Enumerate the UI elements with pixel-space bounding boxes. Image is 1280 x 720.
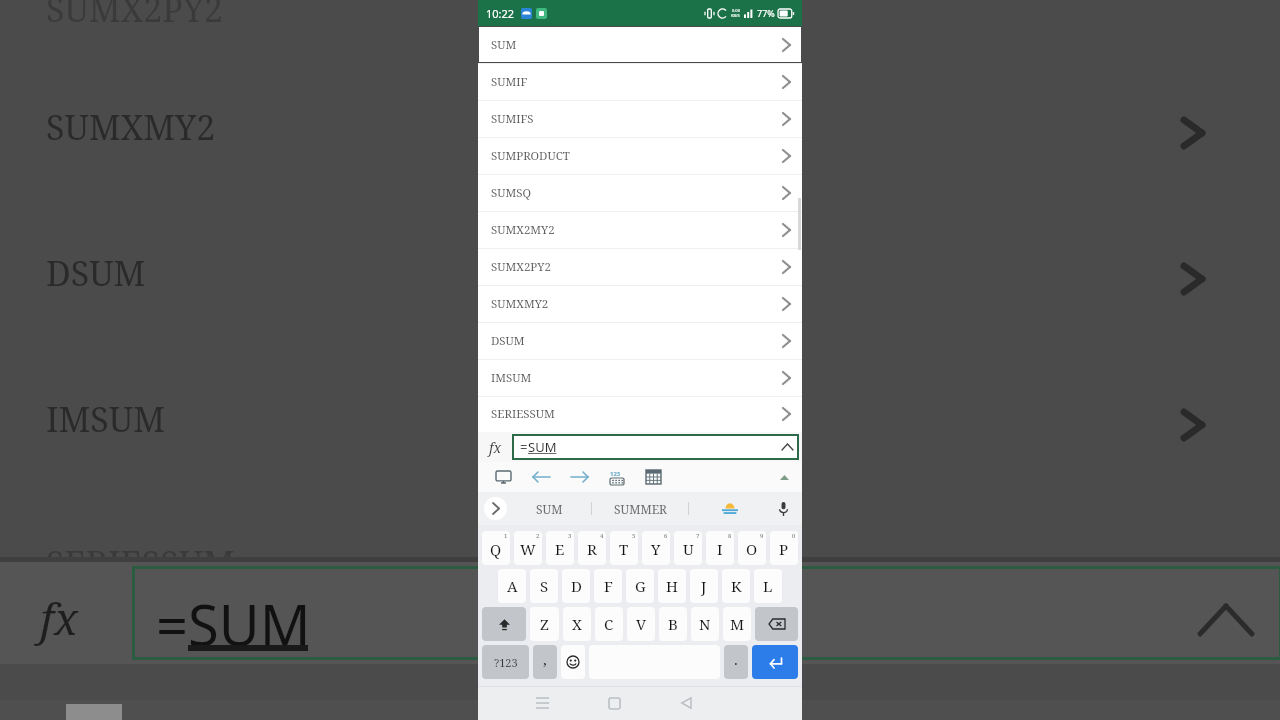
button[interactable]: F: [594, 569, 622, 603]
button[interactable]: V: [627, 607, 655, 641]
button[interactable]: SUMSQ: [478, 174, 802, 211]
button[interactable]: J: [690, 569, 718, 603]
staticText: U: [683, 539, 694, 559]
staticText: 77%: [757, 7, 775, 19]
staticText: M: [730, 614, 745, 634]
button[interactable]: Home: [597, 686, 631, 720]
button[interactable]: Backspace: [755, 607, 798, 641]
staticText: SUM: [528, 438, 557, 456]
button[interactable]: ?123: [482, 645, 529, 679]
staticText: SERIESSUM: [46, 540, 235, 586]
button[interactable]: P: [770, 531, 798, 565]
staticText: 5: [632, 532, 636, 540]
button[interactable]: X: [563, 607, 591, 641]
button[interactable]: Enter: [752, 645, 798, 679]
staticText: SUMPRODUCT: [491, 148, 570, 164]
staticText: J: [701, 576, 707, 596]
button[interactable]: Q: [482, 531, 510, 565]
button[interactable]: M: [723, 607, 751, 641]
button[interactable]: SUMMER: [592, 492, 688, 525]
staticText: IMSUM: [46, 396, 166, 442]
button[interactable]: B: [659, 607, 687, 641]
button[interactable]: SUMPRODUCT: [478, 137, 802, 174]
staticText: ?123: [494, 655, 518, 670]
button[interactable]: O: [738, 531, 766, 565]
staticText: P: [779, 539, 789, 559]
staticText: SUM: [536, 501, 563, 517]
button[interactable]: Z: [530, 607, 559, 641]
staticText: 8: [728, 532, 732, 540]
button[interactable]: Sunrise emoji: [689, 492, 770, 525]
staticText: T: [619, 539, 629, 559]
staticText: D: [571, 576, 582, 596]
button[interactable]: U: [674, 531, 702, 565]
button[interactable]: K: [722, 569, 750, 603]
button[interactable]: C: [595, 607, 623, 641]
staticText: Z: [540, 614, 549, 634]
button[interactable]: ,: [533, 645, 557, 679]
button[interactable]: Voice input: [770, 496, 796, 522]
staticText: W: [520, 539, 536, 559]
button[interactable]: SUMIFS: [478, 100, 802, 137]
button[interactable]: SUMIF: [478, 63, 802, 100]
button[interactable]: Hide toolbar: [774, 467, 794, 487]
staticText: SUMSQ: [491, 185, 532, 201]
staticText: SUM: [491, 37, 517, 53]
button[interactable]: SUM: [478, 26, 802, 63]
button[interactable]: Function: [478, 432, 512, 462]
button[interactable]: T: [610, 531, 638, 565]
staticText: F: [604, 576, 613, 596]
button[interactable]: L: [754, 569, 782, 603]
button[interactable]: R: [578, 531, 606, 565]
button[interactable]: S: [530, 569, 558, 603]
staticText: 6: [664, 532, 668, 540]
button[interactable]: H: [658, 569, 686, 603]
other: Collapse: [782, 444, 793, 450]
button[interactable]: SUMXMY2: [478, 285, 802, 322]
button[interactable]: W: [514, 531, 542, 565]
staticText: 0: [792, 532, 796, 540]
staticText: Q: [490, 539, 502, 559]
button[interactable]: =: [512, 434, 799, 460]
button[interactable]: Numeric keypad: [606, 466, 628, 488]
button[interactable]: Previous: [530, 466, 552, 488]
button[interactable]: SUM: [507, 492, 591, 525]
button[interactable]: Shift: [482, 607, 526, 641]
staticText: DSUM: [491, 333, 525, 349]
button[interactable]: SERIESSUM: [478, 396, 802, 432]
staticText: G: [635, 576, 646, 596]
button[interactable]: N: [691, 607, 719, 641]
staticText: A: [507, 576, 518, 596]
button[interactable]: SUMX2MY2: [478, 211, 802, 248]
staticText: 0.00: [732, 8, 740, 13]
button[interactable]: SUMX2PY2: [478, 248, 802, 285]
staticText: O: [746, 539, 758, 559]
button[interactable]: Freeze panes: [492, 466, 514, 488]
staticText: SUMXMY2: [491, 296, 549, 312]
staticText: SUMXMY2: [46, 104, 216, 150]
button[interactable]: Y: [642, 531, 670, 565]
staticText: SUMIF: [491, 74, 528, 90]
staticText: 7: [696, 532, 700, 540]
button[interactable]: More suggestions: [484, 497, 507, 520]
button[interactable]: G: [626, 569, 654, 603]
staticText: ,: [543, 649, 547, 669]
button[interactable]: D: [562, 569, 590, 603]
button[interactable]: I: [706, 531, 734, 565]
button[interactable]: IMSUM: [478, 359, 802, 396]
staticText: SUMMER: [614, 501, 667, 517]
button[interactable]: Emoji: [561, 645, 585, 679]
staticText: SUMX2MY2: [491, 222, 555, 238]
button[interactable]: Recent apps: [525, 686, 559, 720]
staticText: 3: [568, 532, 572, 540]
button[interactable]: A: [498, 569, 526, 603]
button[interactable]: E: [546, 531, 574, 565]
button[interactable]: DSUM: [478, 322, 802, 359]
staticText: H: [666, 576, 678, 596]
button[interactable]: Insert table: [642, 466, 664, 488]
button[interactable]: .: [724, 645, 748, 679]
button[interactable]: Back: [669, 686, 703, 720]
button[interactable]: Next: [568, 466, 590, 488]
staticText: B: [668, 614, 678, 634]
